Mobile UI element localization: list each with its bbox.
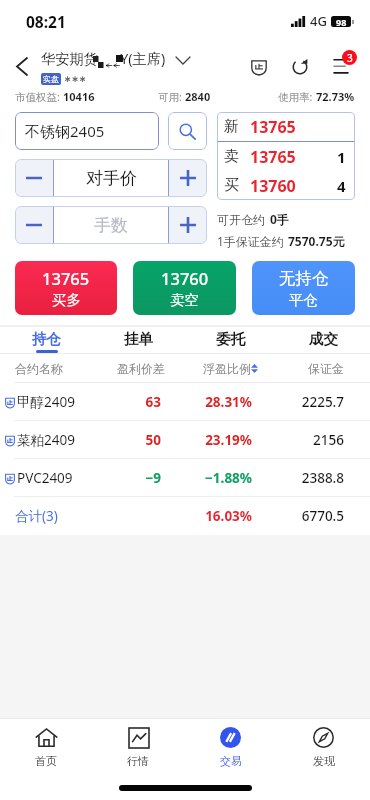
button[interactable]: 交易 (184, 719, 277, 777)
staticText: 28.31% (165, 393, 252, 411)
staticText: 行情 (127, 754, 149, 768)
staticText: 保证金 (258, 361, 344, 376)
staticText: 卖 (224, 147, 239, 166)
button[interactable]: 买 (217, 171, 355, 200)
button[interactable]: 返回 (8, 52, 36, 80)
button[interactable]: 止损设置 (238, 46, 279, 87)
staticText: 2225.7 (258, 393, 344, 411)
staticText: 10416 (63, 89, 95, 104)
staticText: 委托 (216, 330, 245, 348)
button[interactable]: 首页 (0, 719, 92, 777)
button[interactable]: 菜粕2409 (0, 421, 370, 458)
staticText: 市值权益: (15, 90, 63, 104)
staticText: 手数 (94, 215, 128, 236)
staticText: 买 (224, 176, 239, 195)
button[interactable]: 不锈钢2405 (15, 112, 159, 150)
button[interactable]: 持仓 (0, 327, 92, 353)
staticText: 实盘 (43, 74, 59, 84)
staticText: 使用率: (278, 90, 316, 104)
staticText: 新 (224, 117, 239, 136)
staticText: 2388.8 (258, 469, 344, 487)
staticText: 0手 (270, 211, 289, 227)
staticText: 13765 (250, 146, 296, 168)
staticText: 可用: (158, 90, 185, 104)
button[interactable]: 成交 (277, 327, 370, 353)
staticText: 浮盈比例 (203, 361, 251, 376)
button[interactable]: 手数 (54, 206, 168, 244)
staticText: 交易 (220, 754, 242, 768)
staticText: 挂单 (124, 330, 153, 348)
staticText: −9 (85, 469, 161, 487)
staticText: 4 (337, 176, 346, 196)
staticText: 4G (310, 12, 327, 30)
staticText: 华安期货 ˿˿Y(主席) (41, 49, 166, 68)
staticText: 7570.75元 (288, 233, 345, 249)
staticText: 成交 (309, 330, 338, 348)
staticText: 16.03% (165, 507, 252, 525)
staticText: 菜粕2409 (17, 431, 75, 449)
button[interactable]: 委托 (184, 327, 277, 353)
staticText: 1 (337, 147, 346, 167)
staticText: 不锈钢2405 (25, 121, 105, 141)
button[interactable]: 增加 (169, 159, 207, 197)
staticText: 6770.5 (258, 507, 344, 525)
staticText: −1.88% (165, 469, 252, 487)
staticText: 72.73% (316, 89, 355, 104)
button[interactable]: 发现 (277, 719, 370, 777)
staticText: 23.19% (165, 431, 252, 449)
staticText: 13765 (250, 116, 296, 138)
button[interactable]: 13760 (133, 261, 236, 315)
staticText: 98 (336, 16, 347, 27)
staticText: 50 (85, 431, 161, 449)
staticText: PVC2409 (17, 469, 73, 487)
staticText: 首页 (35, 754, 57, 768)
staticText: 08:21 (26, 11, 66, 32)
staticText: 合约名称 (15, 361, 85, 376)
button[interactable]: 卖 (217, 142, 355, 171)
staticText: 可开仓约 (217, 212, 265, 227)
staticText: 无持仓 (279, 268, 329, 289)
button[interactable]: 无持仓 (252, 261, 355, 315)
staticText: 13765 (42, 267, 90, 289)
button[interactable]: 刷新 (279, 46, 320, 87)
staticText: 2840 (185, 89, 211, 104)
staticText: 3 (347, 51, 353, 65)
button[interactable]: 减少 (15, 159, 53, 197)
staticText: 卖空 (170, 291, 199, 309)
staticText: 2156 (258, 431, 344, 449)
button[interactable]: 13765 (15, 261, 117, 315)
staticText: 13760 (250, 175, 296, 197)
button[interactable]: 对手价 (54, 159, 168, 197)
staticText: 合计(3) (15, 507, 85, 525)
button[interactable]: 减少 (15, 206, 53, 244)
staticText: 持仓 (32, 330, 61, 348)
staticText: 对手价 (86, 168, 137, 189)
staticText: 买多 (52, 291, 81, 309)
staticText: 盈利价差 (85, 361, 165, 376)
staticText: 甲醇2409 (17, 393, 75, 411)
button[interactable]: 新 (217, 112, 355, 141)
button[interactable]: 菜单 (320, 44, 361, 88)
staticText: 平仓 (289, 291, 318, 309)
button[interactable]: 搜索 (168, 112, 207, 150)
staticText: 63 (85, 393, 161, 411)
staticText: ∗∗∗ (64, 74, 87, 84)
staticText: 1手保证金约 (217, 233, 284, 249)
staticText: 发现 (313, 754, 335, 768)
button[interactable]: PVC2409 (0, 459, 370, 496)
button[interactable]: 增加 (169, 206, 207, 244)
button[interactable]: 甲醇2409 (0, 383, 370, 420)
button[interactable]: 行情 (92, 719, 184, 777)
staticText: 13760 (161, 267, 209, 289)
button[interactable]: 挂单 (92, 327, 184, 353)
